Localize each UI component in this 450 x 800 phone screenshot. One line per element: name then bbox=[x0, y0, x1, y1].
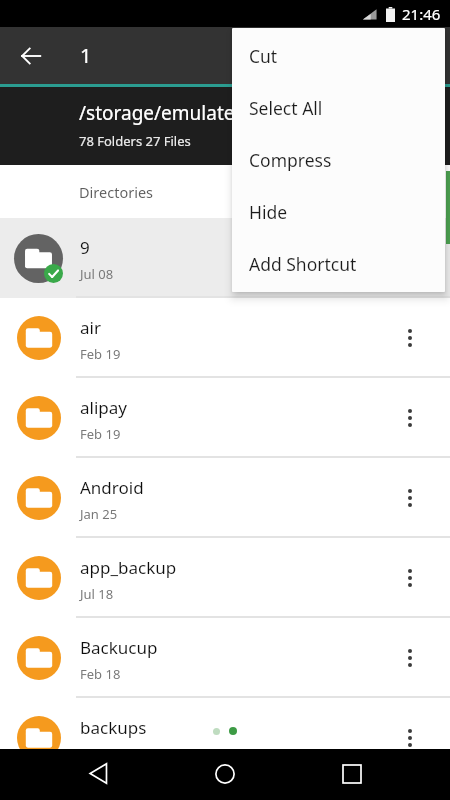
button[interactable]: app_backup bbox=[0, 538, 450, 618]
button[interactable]: Back bbox=[62, 748, 134, 799]
button[interactable]: Cut bbox=[232, 30, 445, 82]
button[interactable]: Hide bbox=[232, 186, 445, 238]
staticText: 9 bbox=[80, 236, 90, 259]
staticText: Jul 08 bbox=[80, 265, 114, 283]
staticText: Backucup bbox=[80, 636, 158, 659]
staticText: 78 Folders 27 Files bbox=[79, 132, 191, 150]
button[interactable]: More options bbox=[370, 458, 450, 538]
button[interactable]: More options bbox=[370, 218, 450, 298]
button[interactable]: More options bbox=[370, 538, 450, 618]
staticText: Feb 18 bbox=[80, 665, 121, 683]
button[interactable]: Back bbox=[0, 27, 62, 84]
staticText: /storage/emulated/0 bbox=[79, 100, 265, 126]
button[interactable]: Home bbox=[189, 748, 261, 799]
staticText: air bbox=[80, 316, 101, 339]
staticText: Jan 25 bbox=[80, 505, 118, 523]
staticText: Jul 18 bbox=[80, 585, 114, 603]
staticText: backups bbox=[80, 716, 147, 739]
staticText: Select All bbox=[249, 96, 323, 120]
staticText: Add Shortcut bbox=[249, 252, 357, 276]
staticText: Android bbox=[80, 476, 144, 499]
button[interactable]: Add Shortcut bbox=[232, 238, 445, 290]
button[interactable]: 9 bbox=[0, 218, 450, 298]
staticText: 1 bbox=[80, 42, 92, 69]
staticText: Directories bbox=[79, 182, 154, 202]
button[interactable]: Android bbox=[0, 458, 450, 538]
button[interactable]: More options bbox=[370, 698, 450, 749]
staticText: Hide bbox=[249, 200, 288, 224]
button[interactable]: alipay bbox=[0, 378, 450, 458]
button[interactable]: Compress bbox=[232, 134, 445, 186]
staticText: Feb 19 bbox=[80, 425, 121, 443]
button[interactable]: Recents bbox=[316, 748, 388, 799]
button[interactable]: More options bbox=[370, 618, 450, 698]
staticText: Cut bbox=[249, 44, 278, 68]
staticText: Feb 19 bbox=[80, 345, 121, 363]
button[interactable]: backups bbox=[0, 698, 450, 749]
staticText: Compress bbox=[249, 148, 332, 172]
button[interactable]: More options bbox=[370, 378, 450, 458]
staticText: 21:46 bbox=[402, 4, 441, 24]
button[interactable]: Select All bbox=[232, 82, 445, 134]
button[interactable]: air bbox=[0, 298, 450, 378]
button[interactable]: More options bbox=[370, 298, 450, 378]
staticText: alipay bbox=[80, 396, 127, 419]
staticText: app_backup bbox=[80, 556, 177, 579]
button[interactable]: Backucup bbox=[0, 618, 450, 698]
